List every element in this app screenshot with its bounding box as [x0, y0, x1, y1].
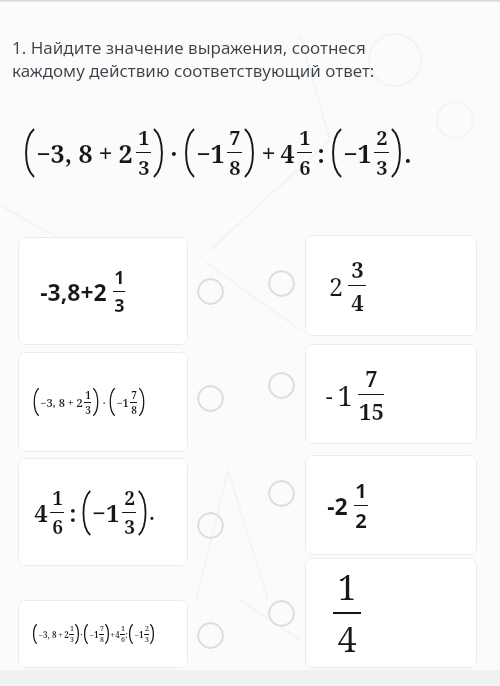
- staticText: −3, 8: [40, 395, 65, 410]
- staticText: ·: [102, 395, 106, 410]
- staticText: ·: [80, 629, 83, 640]
- staticText: .: [404, 136, 412, 170]
- staticText: 1: [70, 624, 74, 634]
- button[interactable]: Вариант 4: [197, 622, 224, 649]
- button[interactable]: Ответ 1: [268, 270, 295, 297]
- button[interactable]: −3, 8: [18, 600, 188, 668]
- staticText: 7: [229, 124, 241, 151]
- staticText: ·: [170, 136, 178, 170]
- staticText: -: [325, 378, 333, 411]
- staticText: 3: [124, 514, 135, 540]
- staticText: +: [58, 629, 63, 640]
- staticText: -2: [327, 490, 348, 521]
- button[interactable]: Ответ 4: [268, 600, 295, 627]
- staticText: 15: [359, 396, 384, 426]
- button[interactable]: Ответ 2: [268, 372, 295, 399]
- staticText: 7: [131, 388, 137, 402]
- staticText: :: [125, 629, 128, 640]
- button[interactable]: 4: [18, 458, 188, 566]
- staticText: 8: [229, 154, 241, 181]
- staticText: 4: [351, 287, 364, 317]
- staticText: 2: [329, 269, 343, 303]
- staticText: :: [69, 496, 77, 529]
- staticText: +: [98, 136, 113, 170]
- staticText: 4: [280, 136, 295, 170]
- staticText: 8: [131, 403, 137, 417]
- staticText: 3: [85, 403, 91, 417]
- staticText: 4: [115, 629, 120, 640]
- staticText: 2: [76, 395, 83, 410]
- staticText: 2: [145, 624, 149, 634]
- staticText: 1: [355, 477, 367, 504]
- staticText: :: [317, 136, 325, 170]
- staticText: .: [149, 499, 155, 526]
- staticText: +: [261, 136, 276, 170]
- staticText: +: [110, 629, 115, 640]
- staticText: 1: [114, 265, 125, 290]
- staticText: 2: [355, 507, 367, 534]
- staticText: 1: [337, 376, 353, 414]
- staticText: 1: [85, 388, 91, 402]
- staticText: 2: [118, 136, 133, 170]
- staticText: 1: [138, 124, 150, 151]
- staticText: −1: [89, 629, 99, 640]
- button[interactable]: Вариант 3: [197, 512, 224, 539]
- staticText: 7: [365, 363, 378, 393]
- staticText: 7: [100, 624, 104, 634]
- staticText: −1: [196, 136, 225, 170]
- staticText: 1. Найдите значение выражения, соотнеся …: [12, 36, 375, 82]
- button[interactable]: Ответ 3: [268, 480, 295, 507]
- staticText: 3: [145, 635, 149, 645]
- staticText: 1: [121, 624, 125, 634]
- staticText: 3: [376, 154, 388, 181]
- staticText: 6: [121, 635, 125, 645]
- staticText: 2: [376, 124, 388, 151]
- button[interactable]: -2: [305, 455, 477, 555]
- staticText: −1: [116, 395, 129, 410]
- staticText: 3: [351, 254, 364, 284]
- staticText: 1: [299, 124, 311, 151]
- button[interactable]: 1: [305, 558, 477, 668]
- staticText: −1: [92, 496, 120, 529]
- staticText: -3,8+2: [40, 276, 107, 307]
- staticText: 1: [337, 564, 357, 610]
- button[interactable]: −3, 8: [18, 352, 188, 452]
- staticText: 4: [337, 616, 357, 662]
- staticText: 6: [52, 514, 63, 540]
- staticText: 2: [64, 629, 69, 640]
- staticText: −1: [134, 629, 144, 640]
- staticText: 8: [100, 635, 104, 645]
- staticText: +: [67, 395, 74, 410]
- staticText: 3: [114, 293, 125, 318]
- staticText: 3: [70, 635, 74, 645]
- staticText: −3, 8: [36, 136, 93, 170]
- button[interactable]: Вариант 2: [197, 385, 224, 412]
- staticText: −1: [343, 136, 372, 170]
- button[interactable]: 2: [305, 235, 477, 336]
- staticText: 4: [34, 496, 48, 529]
- staticText: 3: [138, 154, 150, 181]
- button[interactable]: Вариант 1: [197, 278, 224, 305]
- staticText: −3, 8: [38, 629, 57, 640]
- staticText: 6: [299, 154, 311, 181]
- staticText: 2: [124, 485, 135, 511]
- button[interactable]: -3,8+2: [18, 237, 188, 345]
- staticText: 1: [52, 485, 63, 511]
- button[interactable]: -: [305, 344, 477, 444]
